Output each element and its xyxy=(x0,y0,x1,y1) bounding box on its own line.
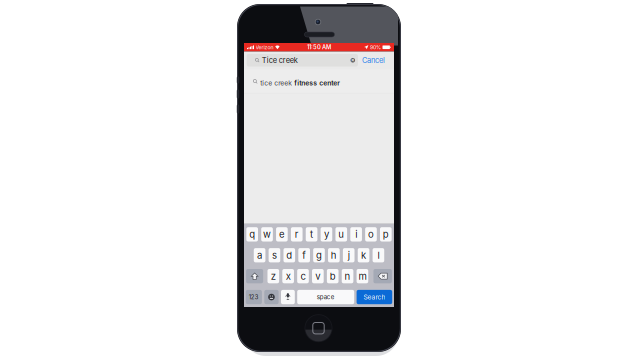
staticText: Cancel xyxy=(362,56,385,65)
button[interactable]: i xyxy=(350,227,362,241)
staticText: p xyxy=(383,228,389,240)
staticText: m xyxy=(358,270,366,282)
staticText: v xyxy=(315,270,320,282)
button[interactable]: w xyxy=(261,227,273,241)
staticText: h xyxy=(331,249,337,261)
staticText: b xyxy=(330,270,336,282)
staticText: 90% xyxy=(370,44,381,50)
button[interactable]: p xyxy=(380,227,392,241)
staticText: tice creek xyxy=(260,79,294,87)
button[interactable]: h xyxy=(328,248,340,262)
button[interactable]: o xyxy=(365,227,377,241)
button[interactable]: x xyxy=(282,269,294,283)
staticText: Tice creek xyxy=(262,56,298,65)
staticText: j xyxy=(348,249,350,261)
button[interactable]: j xyxy=(343,248,355,262)
staticText: u xyxy=(338,228,344,240)
button[interactable]: space xyxy=(297,290,354,304)
staticText: space xyxy=(317,293,335,301)
button[interactable]: r xyxy=(291,227,303,241)
staticText: fitness center xyxy=(294,79,340,87)
button[interactable]: f xyxy=(298,248,310,262)
staticText: t xyxy=(310,228,313,240)
button[interactable]: b xyxy=(327,269,339,283)
button[interactable]: s xyxy=(269,248,280,262)
button[interactable]: d xyxy=(283,248,295,262)
button[interactable]: k xyxy=(358,248,369,262)
staticText: i xyxy=(355,228,357,240)
staticText: c xyxy=(300,270,305,282)
button[interactable]: g xyxy=(313,248,325,262)
staticText: 123 xyxy=(249,293,259,301)
button[interactable]: Shift xyxy=(246,269,263,283)
button[interactable]: t xyxy=(306,227,317,241)
button[interactable]: Clear text xyxy=(350,57,356,63)
button[interactable]: Search xyxy=(357,290,392,304)
button[interactable]: Delete xyxy=(373,269,392,283)
staticText: q xyxy=(249,228,255,240)
button[interactable]: Cancel xyxy=(358,53,389,67)
button[interactable]: c xyxy=(297,269,309,283)
button[interactable]: a xyxy=(254,248,265,262)
staticText: x xyxy=(286,270,291,282)
button[interactable]: y xyxy=(321,227,332,241)
button[interactable]: Dictate xyxy=(281,290,295,304)
staticText: Search xyxy=(363,293,385,301)
staticText: z xyxy=(271,270,276,282)
staticText: f xyxy=(302,249,306,261)
staticText: w xyxy=(263,228,271,240)
staticText: 11:50 AM xyxy=(307,44,331,51)
button[interactable]: l xyxy=(373,248,384,262)
staticText: a xyxy=(257,249,262,261)
staticText: k xyxy=(361,249,366,261)
button[interactable]: m xyxy=(357,269,368,283)
button[interactable]: n xyxy=(342,269,353,283)
button[interactable]: u xyxy=(335,227,347,241)
staticText: l xyxy=(377,249,379,261)
staticText: g xyxy=(316,249,322,261)
staticText: × xyxy=(351,57,355,64)
button[interactable]: e xyxy=(276,227,288,241)
staticText: s xyxy=(272,249,277,261)
button[interactable]: Emoji keyboard xyxy=(264,290,279,304)
button[interactable]: z xyxy=(267,269,279,283)
staticText: r xyxy=(295,228,299,240)
staticText: Verizon xyxy=(255,44,273,50)
button[interactable]: 123 xyxy=(246,290,262,304)
staticText: y xyxy=(324,228,329,240)
staticText: o xyxy=(368,228,374,240)
button[interactable]: v xyxy=(312,269,324,283)
staticText: n xyxy=(344,270,350,282)
staticText: d xyxy=(286,249,292,261)
button[interactable]: q xyxy=(246,227,258,241)
staticText: e xyxy=(279,228,285,240)
button[interactable]: tice creek xyxy=(244,70,394,93)
